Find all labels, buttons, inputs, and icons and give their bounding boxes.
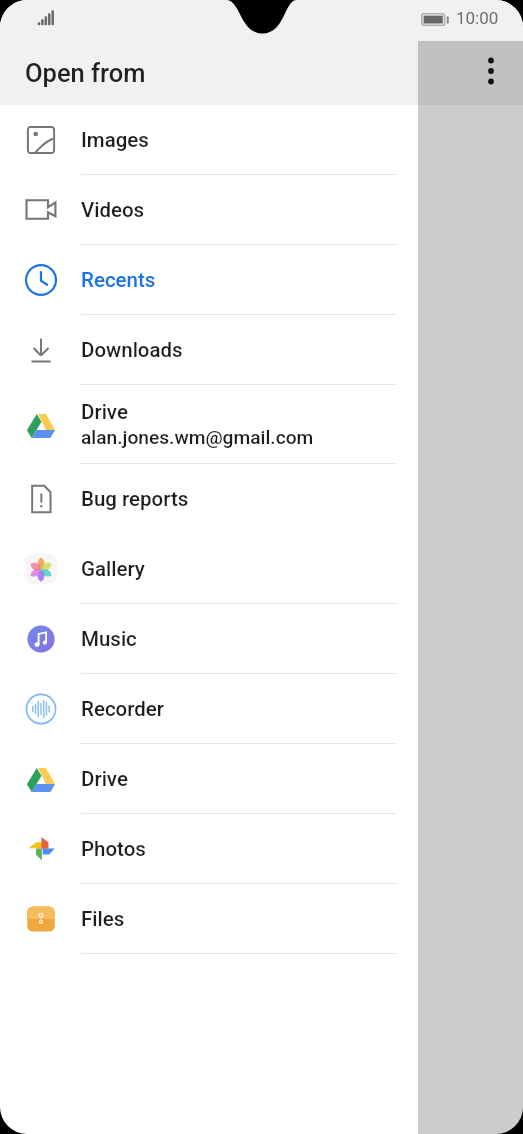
button[interactable]: Downloads: [0, 315, 523, 385]
button[interactable]: Gallery: [0, 534, 523, 604]
staticText: Recents: [81, 268, 156, 292]
staticText: Files: [81, 907, 125, 931]
button[interactable]: Drive: [0, 385, 523, 464]
button[interactable]: Drive: [0, 744, 523, 814]
staticText: Photos: [81, 837, 146, 861]
button[interactable]: Recents: [0, 245, 523, 315]
staticText: Open from: [25, 58, 146, 88]
staticText: Images: [81, 128, 149, 152]
staticText: Gallery: [81, 557, 145, 581]
button[interactable]: Recorder: [0, 674, 523, 744]
staticText: 10:00: [456, 8, 499, 28]
button[interactable]: Files: [0, 884, 523, 954]
staticText: Recorder: [81, 697, 165, 721]
staticText: Drive: [81, 400, 128, 424]
staticText: Music: [81, 627, 137, 651]
staticText: Downloads: [81, 338, 183, 362]
button[interactable]: More options: [467, 47, 515, 95]
staticText: Drive: [81, 767, 128, 791]
button[interactable]: Bug reports: [0, 464, 523, 534]
staticText: Bug reports: [81, 487, 189, 511]
button[interactable]: Videos: [0, 175, 523, 245]
button[interactable]: Music: [0, 604, 523, 674]
staticText: alan.jones.wm@gmail.com: [81, 426, 314, 449]
button[interactable]: Photos: [0, 814, 523, 884]
staticText: Videos: [81, 198, 145, 222]
button[interactable]: Images: [0, 105, 523, 175]
